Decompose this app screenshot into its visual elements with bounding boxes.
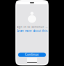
staticText: Sign in to continue using [16,25,47,29]
staticText: Learn more about this [17,29,47,33]
staticText: Continue [25,53,39,56]
button[interactable]: Continue [18,53,46,57]
